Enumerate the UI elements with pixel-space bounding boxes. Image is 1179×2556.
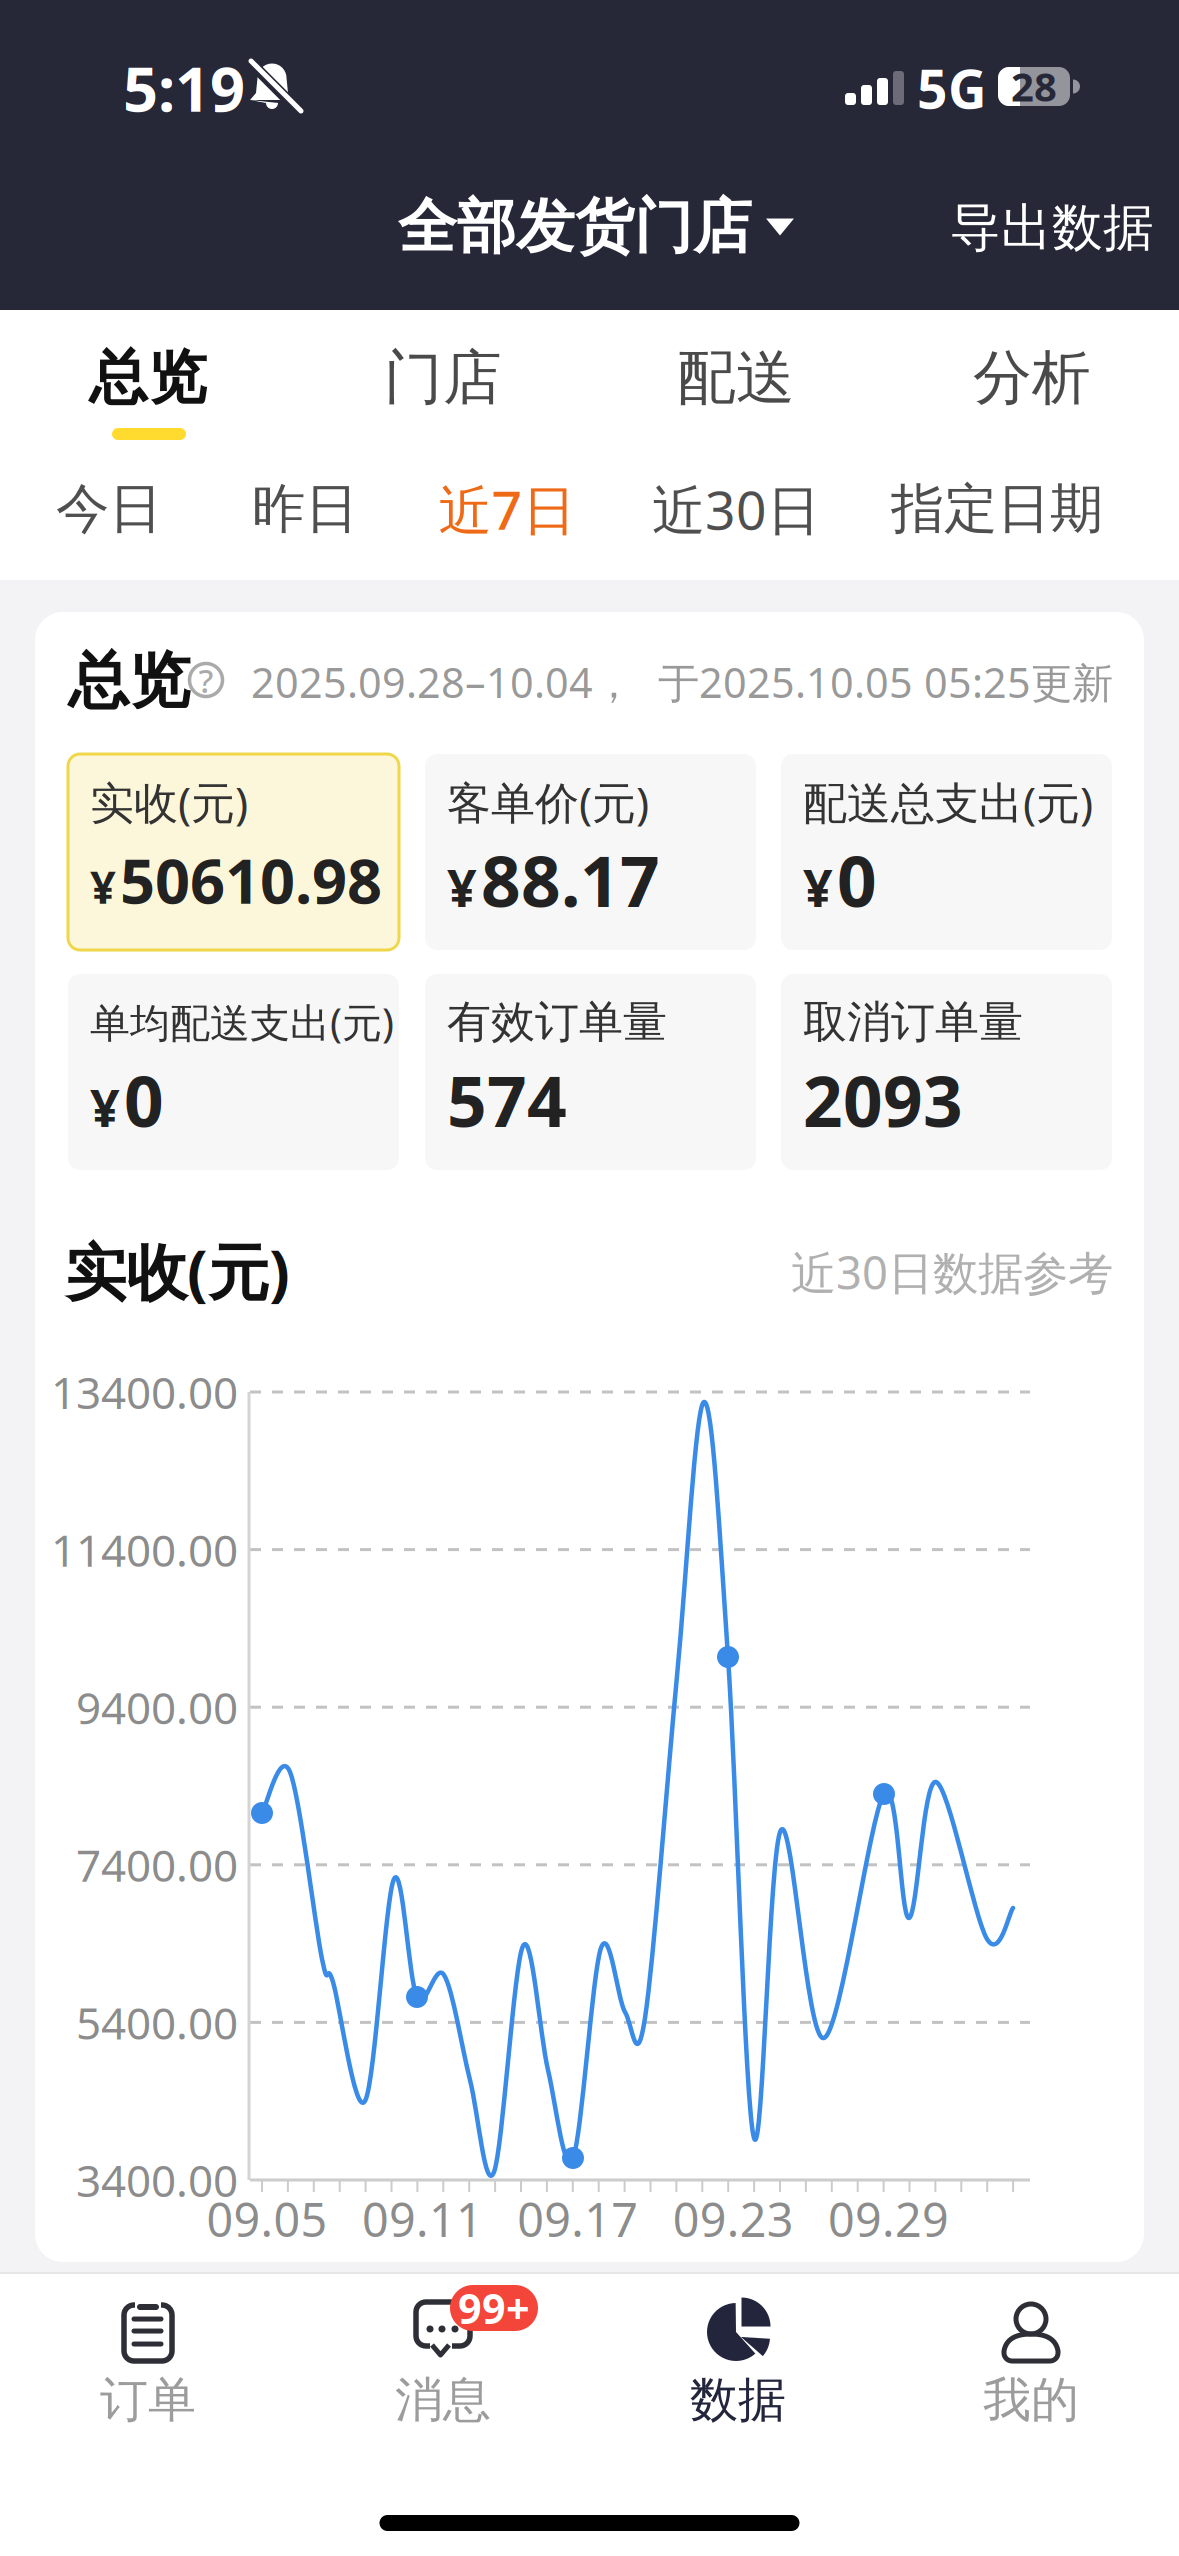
staticText: 3400.00 (76, 2151, 238, 2209)
staticText: 今日 (56, 476, 162, 542)
button[interactable]: 取消订单量 (781, 974, 1112, 1170)
button[interactable]: 我的 (884, 2272, 1179, 2502)
staticText: 5G (917, 53, 987, 123)
button[interactable]: 今日 (29, 464, 189, 554)
staticText: 消息 (395, 2370, 491, 2429)
staticText: 订单 (100, 2370, 196, 2429)
button[interactable]: 单均配送支出(元) (68, 974, 399, 1170)
staticText: 总览 (68, 643, 190, 719)
staticText: 13400.00 (51, 1363, 238, 1421)
staticText: 2093 (803, 1054, 963, 1146)
staticText: 11400.00 (51, 1520, 238, 1579)
staticText: 全部发货门店 (398, 191, 752, 263)
staticText: 50610.98 (120, 839, 382, 921)
button[interactable]: 近7日 (422, 464, 592, 554)
staticText: 7400.00 (76, 1836, 238, 1894)
button[interactable]: 近30日 (641, 464, 831, 554)
staticText: 574 (447, 1054, 567, 1146)
button[interactable]: 导出数据 (950, 197, 1154, 259)
button[interactable]: 门店 (323, 333, 563, 423)
staticText: 分析 (973, 342, 1091, 414)
staticText: 09.17 (517, 2188, 638, 2250)
staticText: 昨日 (252, 476, 358, 542)
staticText: 09.05 (206, 2188, 327, 2250)
button[interactable]: 分析 (912, 333, 1152, 423)
staticText: 88.17 (481, 834, 660, 926)
staticText: 09.29 (828, 2188, 949, 2250)
staticText: ¥ (447, 852, 477, 921)
staticText: 99+ (458, 2281, 530, 2335)
staticText: 指定日期 (891, 476, 1103, 542)
staticText: ¥ (90, 1072, 120, 1141)
staticText: 2025.09.28–10.04， 于2025.10.05 05:25更新 (251, 655, 1113, 709)
staticText: 有效订单量 (447, 995, 667, 1049)
staticText: ¥ (803, 852, 833, 921)
button[interactable]: 99+ (295, 2272, 590, 2502)
button[interactable]: 帮助 (184, 658, 228, 702)
staticText: 9400.00 (76, 1678, 238, 1736)
staticText: 数据 (690, 2370, 786, 2429)
staticText: 配送总支出(元) (803, 773, 1093, 831)
staticText: 近30日 (652, 474, 820, 544)
button[interactable]: 有效订单量 (425, 974, 756, 1170)
staticText: 5:19 (123, 47, 245, 129)
staticText: 门店 (384, 342, 502, 414)
staticText: 0 (124, 1054, 164, 1146)
staticText: 配送 (677, 342, 795, 414)
staticText: 实收(元) (90, 773, 248, 831)
staticText: 近30日数据参考 (791, 1242, 1113, 1302)
staticText: 我的 (983, 2370, 1079, 2429)
staticText: ? (198, 658, 213, 702)
staticText: 0 (837, 834, 877, 926)
staticText: ¥ (90, 856, 116, 916)
staticText: 取消订单量 (803, 995, 1023, 1049)
button[interactable]: 全部发货门店 (398, 191, 794, 263)
button[interactable]: 订单 (0, 2272, 295, 2502)
staticText: 实收(元) (65, 1230, 290, 1312)
button[interactable]: 总览 (28, 333, 268, 423)
button[interactable]: 昨日 (225, 464, 385, 554)
staticText: 总览 (89, 342, 207, 414)
button[interactable]: 客单价(元) (425, 754, 756, 950)
button[interactable]: 实收(元) (68, 754, 399, 950)
staticText: 28 (1011, 59, 1057, 112)
button[interactable]: 数据 (590, 2272, 885, 2502)
staticText: 09.23 (673, 2188, 794, 2250)
button[interactable]: 指定日期 (887, 464, 1107, 554)
staticText: 导出数据 (950, 197, 1154, 259)
staticText: 客单价(元) (447, 773, 649, 831)
button[interactable]: 配送总支出(元) (781, 754, 1112, 950)
staticText: 09.11 (362, 2188, 483, 2250)
button[interactable]: 配送 (616, 333, 856, 423)
staticText: 单均配送支出(元) (90, 995, 394, 1048)
staticText: 近7日 (438, 474, 575, 544)
staticText: 5400.00 (76, 1993, 238, 2052)
